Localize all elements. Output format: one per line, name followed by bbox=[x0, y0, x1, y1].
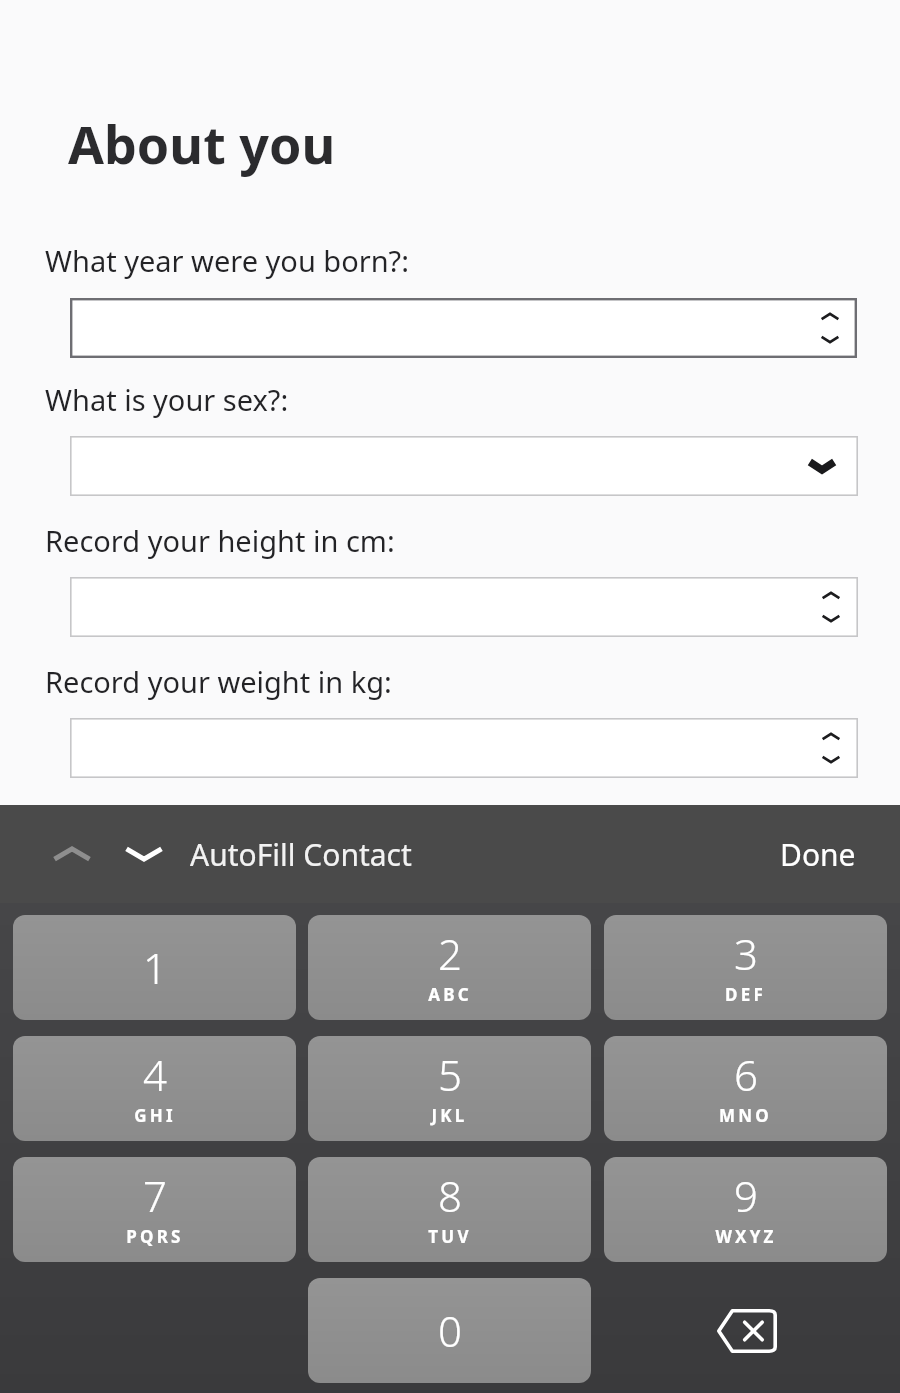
button[interactable] bbox=[70, 436, 858, 496]
button[interactable] bbox=[70, 298, 857, 358]
staticText: What is your sex?: bbox=[45, 380, 289, 419]
button[interactable]: Previous field bbox=[44, 826, 100, 882]
button[interactable]: Done bbox=[780, 834, 856, 875]
staticText: 5 bbox=[438, 1046, 462, 1103]
button[interactable]: Next field bbox=[116, 826, 172, 882]
staticText: 6 bbox=[734, 1046, 758, 1103]
button[interactable]: 1 bbox=[13, 915, 296, 1020]
staticText: Done bbox=[780, 834, 856, 875]
button[interactable]: Backspace bbox=[604, 1278, 887, 1383]
staticText: Record your weight in kg: bbox=[45, 662, 392, 701]
staticText: JKL bbox=[431, 1104, 468, 1127]
button[interactable] bbox=[70, 718, 858, 778]
button[interactable]: 2 bbox=[308, 915, 591, 1020]
button[interactable]: 0 bbox=[308, 1278, 591, 1383]
staticText: 4 bbox=[143, 1046, 167, 1103]
staticText: DEF bbox=[725, 983, 766, 1006]
staticText: WXYZ bbox=[715, 1225, 777, 1248]
button[interactable]: AutoFill Contact bbox=[190, 834, 412, 875]
staticText: TUV bbox=[428, 1225, 472, 1248]
staticText: ABC bbox=[428, 983, 472, 1006]
staticText: GHI bbox=[134, 1104, 176, 1127]
button[interactable] bbox=[70, 577, 858, 637]
staticText: 9 bbox=[734, 1167, 758, 1224]
staticText: 7 bbox=[143, 1167, 167, 1224]
button[interactable]: 9 bbox=[604, 1157, 887, 1262]
staticText: About you bbox=[68, 108, 336, 179]
staticText: 3 bbox=[734, 925, 758, 982]
staticText: 1 bbox=[143, 939, 167, 996]
button[interactable]: 4 bbox=[13, 1036, 296, 1141]
button[interactable]: 6 bbox=[604, 1036, 887, 1141]
button[interactable]: 5 bbox=[308, 1036, 591, 1141]
staticText: What year were you born?: bbox=[45, 241, 409, 280]
button[interactable]: 7 bbox=[13, 1157, 296, 1262]
staticText: 0 bbox=[438, 1302, 462, 1359]
staticText: Record your height in cm: bbox=[45, 521, 395, 560]
staticText: 8 bbox=[438, 1167, 462, 1224]
button[interactable]: 8 bbox=[308, 1157, 591, 1262]
staticText: MNO bbox=[719, 1104, 772, 1127]
staticText: 2 bbox=[438, 925, 462, 982]
button[interactable]: 3 bbox=[604, 915, 887, 1020]
staticText: PQRS bbox=[126, 1225, 184, 1248]
